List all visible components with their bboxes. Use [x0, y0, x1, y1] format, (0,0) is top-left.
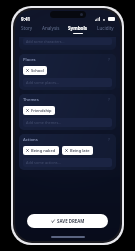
staticText: Places	[23, 57, 36, 63]
staticText: Friendship	[31, 108, 52, 113]
button[interactable]: Analysis	[40, 24, 62, 34]
button[interactable]: Symbols	[66, 24, 90, 35]
staticText: Story	[21, 25, 33, 31]
staticText: Being late	[70, 148, 90, 153]
staticText: Being naked	[31, 148, 56, 153]
staticText: SAVE DREAM	[57, 218, 85, 224]
button[interactable]: Lucidity	[95, 24, 116, 34]
button[interactable]: Friendship	[23, 106, 55, 115]
button[interactable]: Help about Places	[106, 57, 112, 63]
button[interactable]: Being naked	[23, 146, 59, 155]
staticText: Themes	[23, 97, 39, 103]
button[interactable]: Add some themes...	[23, 118, 112, 127]
staticText: Analysis	[42, 25, 60, 31]
button[interactable]: School	[23, 66, 47, 75]
staticText: Add some themes...	[26, 120, 62, 125]
staticText: 9:41	[21, 16, 31, 22]
staticText: ?	[108, 97, 110, 103]
button[interactable]: Add some characters...	[23, 38, 112, 45]
button[interactable]: Add some places...	[23, 78, 112, 87]
staticText: Actions	[23, 137, 38, 143]
button[interactable]: Help about Actions	[106, 137, 112, 143]
button[interactable]: Story	[19, 24, 35, 34]
staticText: Symbols	[68, 25, 88, 31]
button[interactable]: Help about Themes	[106, 97, 112, 103]
staticText: ?	[108, 57, 110, 63]
button[interactable]: Being late	[62, 146, 93, 155]
staticText: Add some actions...	[26, 160, 61, 165]
staticText: Lucidity	[97, 25, 114, 31]
staticText: ?	[108, 137, 110, 143]
button[interactable]: SAVE DREAM	[27, 214, 108, 228]
staticText: School	[31, 68, 44, 73]
staticText: Add some characters...	[26, 39, 65, 44]
staticText: Add some places...	[26, 80, 60, 85]
button[interactable]: Add some actions...	[23, 158, 112, 167]
